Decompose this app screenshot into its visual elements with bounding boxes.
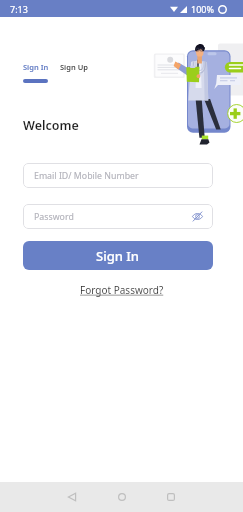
staticText: Sign In xyxy=(23,62,49,72)
button[interactable]: Sign In xyxy=(23,241,213,270)
button[interactable]: Sign Up xyxy=(60,62,88,72)
staticText: Welcome xyxy=(23,117,79,134)
staticText: Password xyxy=(34,211,74,223)
staticText: Sign Up xyxy=(60,62,88,72)
button[interactable]: Home xyxy=(110,485,134,509)
button[interactable]: Sign In xyxy=(23,62,49,72)
button[interactable]: Password xyxy=(23,204,213,229)
staticText: Email ID/ Mobile Number xyxy=(34,170,139,182)
staticText: 100% xyxy=(191,3,214,15)
button[interactable]: Forgot Password? xyxy=(74,281,170,299)
button[interactable]: Back xyxy=(60,485,84,509)
button[interactable]: Show password xyxy=(192,211,203,222)
button[interactable]: Email ID/ Mobile Number xyxy=(23,163,213,188)
staticText: Sign In xyxy=(96,247,140,265)
button[interactable]: Recent apps xyxy=(159,485,183,509)
staticText: 7:13 xyxy=(10,3,28,15)
